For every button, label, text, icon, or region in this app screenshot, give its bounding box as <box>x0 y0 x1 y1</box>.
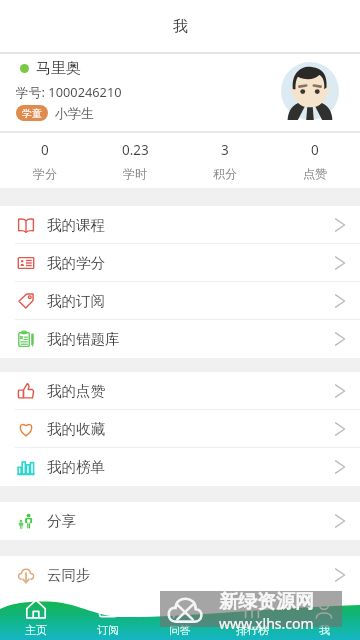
staticText: 小学生 <box>55 105 94 121</box>
staticText: 我的榜单 <box>47 458 105 476</box>
staticText: 马里奥 <box>36 59 81 78</box>
staticText: 新绿资源网 <box>219 590 314 614</box>
button[interactable]: 我的订阅 <box>0 282 360 320</box>
staticText: 0 <box>41 141 49 159</box>
staticText: 3 <box>221 141 229 159</box>
button[interactable]: 0 <box>0 133 90 188</box>
button[interactable]: 我 <box>288 594 360 640</box>
staticText: 我 <box>319 623 330 637</box>
staticText: 学时 <box>123 166 147 181</box>
button[interactable]: 主页 <box>0 594 72 640</box>
button[interactable]: 云同步 <box>0 556 360 594</box>
button[interactable]: 订阅 <box>72 594 144 640</box>
staticText: 学分 <box>33 166 57 181</box>
button[interactable]: 我的课程 <box>0 206 360 244</box>
staticText: 点赞 <box>303 166 327 181</box>
staticText: 我的课程 <box>47 216 105 234</box>
staticText: 我的学分 <box>47 254 105 272</box>
staticText: 我的收藏 <box>47 420 105 438</box>
staticText: 分享 <box>47 512 76 530</box>
button[interactable]: 我的错题库 <box>0 320 360 358</box>
button[interactable]: 0.23 <box>90 133 180 188</box>
staticText: 0.23 <box>122 141 149 159</box>
button[interactable]: 我的点赞 <box>0 372 360 410</box>
staticText: 主页 <box>25 623 47 637</box>
staticText: 问答 <box>169 623 191 637</box>
staticText: 排行榜 <box>236 623 269 637</box>
staticText: 学号: 1000246210 <box>16 83 122 100</box>
button[interactable]: 问答 <box>144 594 216 640</box>
staticText: 我 <box>173 17 188 36</box>
staticText: 0 <box>311 141 319 159</box>
button[interactable]: 我的收藏 <box>0 410 360 448</box>
staticText: 订阅 <box>97 623 119 637</box>
button[interactable]: 排行榜 <box>216 594 288 640</box>
button[interactable]: 0 <box>270 133 360 188</box>
staticText: 云同步 <box>47 566 91 584</box>
button[interactable]: 马里奥 <box>0 54 360 131</box>
staticText: 我的错题库 <box>47 330 120 348</box>
button[interactable]: 3 <box>180 133 270 188</box>
staticText: 我的订阅 <box>47 292 105 310</box>
staticText: 我的点赞 <box>47 382 105 400</box>
staticText: 学童 <box>22 107 42 120</box>
staticText: www.xlhs.com <box>219 614 314 633</box>
button[interactable]: 分享 <box>0 502 360 540</box>
staticText: 积分 <box>213 166 237 181</box>
button[interactable]: 我的榜单 <box>0 448 360 486</box>
button[interactable]: 我的学分 <box>0 244 360 282</box>
